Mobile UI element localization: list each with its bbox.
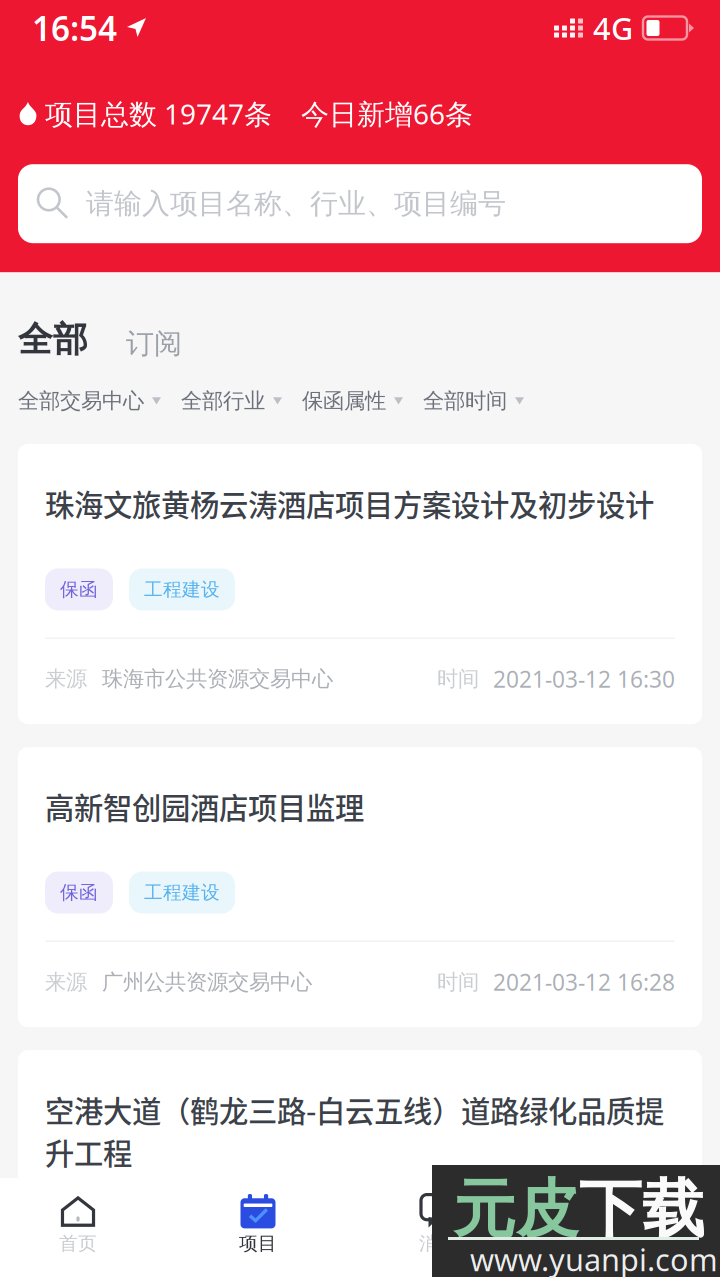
staticText: 项目 [239, 1232, 277, 1255]
button[interactable]: 高新智创园酒店项目监理 [18, 747, 702, 1027]
button[interactable]: 保函属性 [302, 388, 403, 414]
button[interactable]: 全部交易中心 [18, 388, 161, 414]
staticText: 全部 [18, 318, 88, 361]
button[interactable]: 空港大道（鹤龙三路-白云五线）道路绿化品质提升工程 [18, 1050, 702, 1280]
staticText: 2021-03-12 16:28 [493, 967, 675, 997]
staticText: 珠海市公共资源交易中心 [102, 666, 333, 692]
staticText: 空港大道（鹤龙三路-白云五线）道路绿化品质提升工程 [45, 1088, 664, 1173]
button[interactable]: 订阅 [88, 326, 182, 361]
button[interactable]: 项目 [168, 1194, 348, 1255]
staticText: 时间 [437, 666, 479, 692]
staticText: 元皮 [453, 1171, 579, 1248]
staticText: 请输入项目名称、行业、项目编号 [86, 186, 506, 221]
staticText: 保函属性 [302, 388, 386, 414]
staticText: 保函 [60, 1227, 98, 1249]
button[interactable]: 首页 [0, 1194, 168, 1255]
staticText: 全部交易中心 [18, 388, 144, 414]
button[interactable]: 全部时间 [423, 388, 524, 414]
button[interactable]: 我的 [528, 1194, 708, 1255]
button[interactable]: 全部行业 [181, 388, 282, 414]
staticText: 首页 [59, 1232, 97, 1255]
staticText: 保函 [60, 578, 98, 601]
staticText: 高新智创园酒店项目监理 [45, 785, 364, 827]
staticText: 珠海文旅黄杨云涛酒店项目方案设计及初步设计 [45, 482, 654, 524]
staticText: 时间 [437, 969, 479, 995]
button[interactable]: 珠海文旅黄杨云涛酒店项目方案设计及初步设计 [18, 444, 702, 724]
staticText: 消息 [419, 1232, 457, 1255]
staticText: 2021-03-12 16:30 [493, 664, 675, 694]
staticText: 工程建设 [144, 578, 220, 601]
staticText: 全部行业 [181, 388, 265, 414]
staticText: 订阅 [126, 326, 182, 361]
staticText: 4G [593, 8, 633, 48]
staticText: 16:54 [32, 6, 117, 50]
staticText: 工程建设 [144, 881, 220, 904]
staticText: 今日新增66条 [301, 95, 473, 132]
button[interactable]: 全部 [18, 318, 88, 361]
staticText: 来源 [45, 666, 87, 692]
staticText: 全部时间 [423, 388, 507, 414]
staticText: 下载 [579, 1171, 705, 1248]
button[interactable]: 请输入项目名称、行业、项目编号 [18, 164, 702, 243]
button[interactable]: 消息 [348, 1194, 528, 1255]
staticText: 广州公共资源交易中心 [102, 969, 312, 995]
staticText: 来源 [45, 969, 87, 995]
staticText: 项目总数 19747条 [45, 95, 272, 132]
staticText: 我的 [599, 1232, 637, 1255]
staticText: www.yuanpi.com [470, 1239, 718, 1280]
staticText: 保函 [60, 881, 98, 904]
